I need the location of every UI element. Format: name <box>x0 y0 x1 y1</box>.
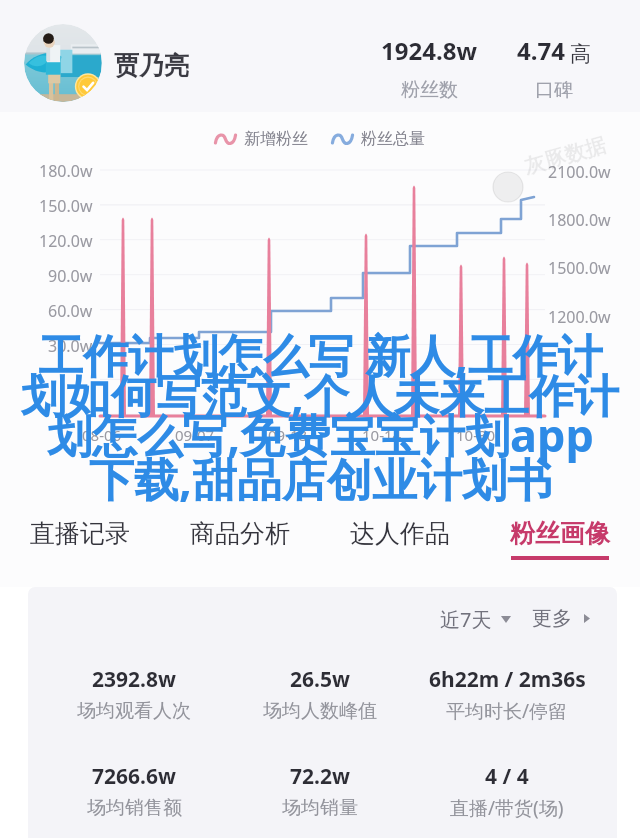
staticText: 1924.8w <box>381 34 477 67</box>
staticText: 1200.0w <box>548 306 611 326</box>
staticText: 贾乃亮 <box>114 50 189 81</box>
staticText: 09-18 <box>268 425 308 445</box>
staticText: 灰豚数据 <box>521 132 609 180</box>
staticText: 30.0w <box>48 335 93 355</box>
staticText: 72.2w <box>290 762 350 791</box>
button[interactable]: 4.74 <box>498 34 609 102</box>
staticText: 08-06 <box>82 425 122 445</box>
staticText: 高 <box>570 41 591 67</box>
staticText: 1500.0w <box>548 257 611 277</box>
staticText: 180.0w <box>39 160 93 180</box>
button[interactable]: 更多 <box>532 606 590 631</box>
staticText: 10-30 <box>456 425 496 445</box>
staticText: 更多 <box>532 606 572 631</box>
staticText: 达人作品 <box>350 518 450 549</box>
staticText: 1800.0w <box>548 209 611 229</box>
staticText: 粉丝总量 <box>361 129 425 149</box>
staticText: 场均观看人次 <box>77 699 191 723</box>
button[interactable]: 贾乃亮 <box>110 44 193 87</box>
staticText: 下载,甜品店创业计划书 <box>89 448 552 509</box>
staticText: 口碑 <box>535 78 573 102</box>
staticText: 150.0w <box>39 195 93 215</box>
staticText: 直播记录 <box>30 518 130 549</box>
staticText: 60.0w <box>48 300 93 320</box>
staticText: 划如何写范文,个人未来工作计 <box>21 364 619 425</box>
staticText: 场均人数峰值 <box>263 699 377 723</box>
staticText: 09-07 <box>175 425 215 445</box>
staticText: 6h22m / 2m36s <box>429 665 586 694</box>
staticText: 26.5w <box>290 665 350 694</box>
staticText: 平均时长/停留 <box>446 698 568 724</box>
staticText: 2100.0w <box>548 161 611 181</box>
staticText: 粉丝数 <box>401 78 458 102</box>
staticText: 直播/带货(场) <box>450 795 564 821</box>
button[interactable]: 达人作品 <box>320 505 480 587</box>
button[interactable]: 粉丝画像 <box>480 505 640 587</box>
staticText: 场均销量 <box>282 796 358 820</box>
staticText: 场均销售额 <box>87 796 182 820</box>
button[interactable]: 近7天 <box>440 606 511 633</box>
staticText: 120.0w <box>39 230 93 250</box>
button[interactable]: 1924.8w <box>369 34 489 102</box>
button[interactable]: 商品分析 <box>160 505 320 587</box>
staticText: 粉丝画像 <box>510 518 610 549</box>
staticText: 90.0w <box>48 265 93 285</box>
button[interactable]: 贾乃亮头像 <box>24 24 102 102</box>
staticText: 划怎么写,免费宝宝计划app <box>47 404 594 465</box>
staticText: 2392.8w <box>92 665 176 694</box>
staticText: 新增粉丝 <box>244 129 308 149</box>
staticText: 4 / 4 <box>485 762 529 791</box>
staticText: 近7天 <box>440 606 492 633</box>
staticText: 工作计划怎么写 新人,工作计 <box>38 324 603 385</box>
staticText: 4.74 <box>517 34 565 67</box>
staticText: 商品分析 <box>190 518 290 549</box>
button[interactable]: 直播记录 <box>0 505 160 587</box>
staticText: 7266.6w <box>92 762 176 791</box>
staticText: 10-14 <box>362 425 402 445</box>
